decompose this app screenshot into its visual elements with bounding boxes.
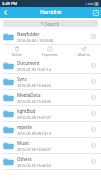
staticText: mpvite	[17, 124, 32, 130]
button[interactable]: More options for Music	[89, 141, 98, 150]
staticText: 2016-06-09 15:54:33	[17, 83, 51, 88]
staticText: Move to	[78, 53, 91, 57]
button[interactable]: Document	[0, 58, 101, 74]
staticText: Others	[17, 156, 32, 162]
button[interactable]: Move to	[67, 45, 101, 58]
button[interactable]: Others	[0, 154, 101, 170]
staticText: 3:45 PM	[2, 1, 18, 6]
staticText: 2016-07-09 10:03:37	[17, 147, 51, 152]
staticText: Document	[17, 60, 40, 66]
button[interactable]: Search	[3, 20, 98, 27]
staticText: Search	[45, 21, 60, 27]
button[interactable]: mpvite	[0, 122, 101, 138]
button[interactable]: More options for MediaData	[89, 93, 98, 102]
button[interactable]: Newfolder	[0, 29, 101, 45]
button[interactable]: Delete	[0, 45, 33, 58]
button[interactable]: Back	[0, 7, 11, 18]
button[interactable]: Sync	[0, 74, 101, 90]
button[interactable]: More options for Sync	[89, 77, 98, 86]
staticText: lightBud	[17, 108, 36, 114]
staticText: Delete	[12, 53, 22, 57]
staticText: MediaData	[17, 92, 41, 98]
button[interactable]: More options for lightBud	[89, 109, 98, 118]
button[interactable]: More options for Newfolder	[89, 32, 98, 41]
button[interactable]: Music	[0, 138, 101, 154]
staticText: 2016-06-05 16:44:50	[17, 163, 51, 168]
staticText: 2016-07-09 16:01:14	[17, 67, 51, 72]
staticText: Music	[17, 140, 30, 146]
staticText: 2016-06-04 / 10:50:08	[17, 38, 54, 43]
button[interactable]: More options for Others	[89, 157, 98, 166]
button[interactable]: lightBud	[0, 106, 101, 122]
staticText: Newfolder	[17, 31, 40, 37]
staticText: 2016-05-09 16:07:37	[17, 115, 51, 120]
button[interactable]: MediaData	[0, 90, 101, 106]
staticText: 2016-06-04 15:54:36	[17, 99, 51, 104]
button[interactable]: More options for Document	[89, 61, 98, 70]
staticText: Properties	[42, 53, 58, 57]
button[interactable]: More options for mpvite	[89, 125, 98, 134]
staticText: 2016-05-09 09:14:19	[17, 131, 51, 136]
button[interactable]: Properties	[33, 45, 67, 58]
staticText: Sync	[17, 76, 27, 82]
button[interactable]: Edit	[90, 7, 101, 18]
staticText: Harddisk	[40, 9, 62, 16]
